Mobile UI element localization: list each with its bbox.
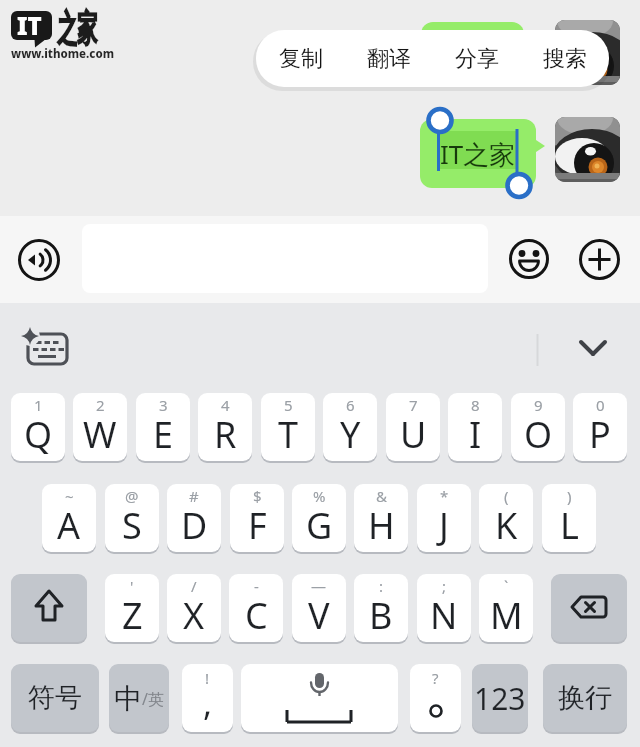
staticText: Y: [340, 410, 361, 459]
button[interactable]: —: [292, 574, 346, 642]
button[interactable]: 符号: [11, 664, 99, 732]
button[interactable]: [11, 574, 87, 642]
button[interactable]: !: [182, 664, 233, 732]
button[interactable]: 分享: [433, 30, 521, 87]
staticText: F: [248, 501, 267, 550]
staticText: Q: [24, 410, 53, 459]
staticText: N: [430, 591, 458, 640]
staticText: W: [83, 410, 117, 459]
button[interactable]: 搜索: [521, 30, 609, 87]
button[interactable]: ~: [42, 484, 96, 552]
button[interactable]: @: [105, 484, 159, 552]
staticText: 5: [284, 395, 293, 415]
staticText: 6: [346, 395, 355, 415]
button[interactable]: [551, 574, 627, 642]
staticText: J: [439, 501, 449, 550]
staticText: 符号: [28, 681, 82, 715]
button[interactable]: IT之家: [420, 119, 536, 188]
staticText: 分享: [455, 45, 499, 73]
button[interactable]: 换行: [543, 664, 627, 732]
button[interactable]: :: [354, 574, 408, 642]
staticText: P: [589, 410, 611, 459]
button[interactable]: 2: [73, 393, 127, 461]
button[interactable]: [18, 239, 60, 281]
button[interactable]: /: [167, 574, 221, 642]
staticText: -: [254, 576, 259, 596]
staticText: ': [130, 576, 134, 596]
staticText: www.ithome.com: [11, 46, 114, 62]
staticText: M: [490, 591, 523, 640]
staticText: U: [400, 410, 427, 459]
staticText: IT之家: [440, 136, 516, 172]
staticText: D: [181, 501, 208, 550]
staticText: ;: [442, 576, 447, 596]
button[interactable]: $: [230, 484, 284, 552]
button[interactable]: [241, 664, 398, 732]
staticText: A: [57, 501, 81, 550]
button[interactable]: 1: [11, 393, 65, 461]
staticText: 9: [534, 395, 543, 415]
button[interactable]: 翻译: [345, 30, 433, 87]
staticText: !: [205, 668, 210, 688]
button[interactable]: 3: [136, 393, 190, 461]
button[interactable]: ;: [417, 574, 471, 642]
button[interactable]: 8: [448, 393, 502, 461]
staticText: 0: [596, 395, 605, 415]
button[interactable]: 123: [472, 664, 528, 732]
button[interactable]: 7: [386, 393, 440, 461]
button[interactable]: -: [229, 574, 283, 642]
staticText: O: [524, 410, 553, 459]
button[interactable]: [20, 325, 72, 371]
staticText: B: [369, 591, 393, 640]
button[interactable]: ': [105, 574, 159, 642]
staticText: 搜索: [543, 45, 587, 73]
button[interactable]: [530, 330, 620, 370]
staticText: (: [504, 486, 509, 506]
staticText: R: [214, 410, 237, 459]
staticText: L: [560, 501, 579, 550]
staticText: $: [253, 486, 262, 506]
staticText: 中: [114, 681, 142, 716]
button[interactable]: 4: [198, 393, 252, 461]
button[interactable]: [579, 239, 620, 280]
staticText: ,: [203, 680, 213, 726]
button[interactable]: 9: [511, 393, 565, 461]
button[interactable]: (: [479, 484, 533, 552]
staticText: —: [311, 576, 327, 596]
button[interactable]: %: [292, 484, 346, 552]
button[interactable]: *: [417, 484, 471, 552]
button[interactable]: #: [167, 484, 221, 552]
staticText: IT: [17, 9, 42, 42]
staticText: K: [495, 501, 518, 550]
staticText: E: [153, 410, 174, 459]
staticText: :: [379, 576, 384, 596]
staticText: ): [567, 486, 572, 506]
button[interactable]: 中: [109, 664, 169, 732]
staticText: 复制: [279, 45, 323, 73]
button[interactable]: &: [354, 484, 408, 552]
staticText: T: [278, 410, 299, 459]
staticText: /英: [142, 688, 164, 710]
staticText: Z: [122, 591, 143, 640]
staticText: 8: [471, 395, 480, 415]
button[interactable]: ?: [410, 664, 461, 732]
button[interactable]: [555, 117, 620, 182]
button[interactable]: `: [479, 574, 533, 642]
staticText: 3: [159, 395, 168, 415]
button[interactable]: [555, 20, 620, 85]
button[interactable]: ): [542, 484, 596, 552]
staticText: V: [308, 591, 330, 640]
staticText: 4: [221, 395, 230, 415]
button[interactable]: 复制: [256, 30, 345, 87]
button[interactable]: 6: [323, 393, 377, 461]
staticText: &: [376, 486, 387, 506]
staticText: %: [313, 486, 326, 506]
staticText: C: [245, 591, 268, 640]
staticText: 7: [409, 395, 418, 415]
button[interactable]: 0: [573, 393, 627, 461]
button[interactable]: [509, 239, 549, 279]
button[interactable]: 5: [261, 393, 315, 461]
staticText: S: [122, 501, 142, 550]
staticText: X: [183, 591, 205, 640]
